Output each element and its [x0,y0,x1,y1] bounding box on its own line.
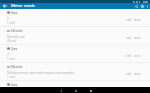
staticText: view [134,72,141,76]
button[interactable]: Electric [0,63,150,80]
staticText: Monthly use [7,35,25,39]
staticText: 1 unit [7,57,15,61]
button[interactable]: Recent apps [88,88,93,93]
staticText: 24 unit [7,39,17,43]
button[interactable]: Add reading [139,3,145,9]
staticText: 7 [7,53,9,57]
button[interactable]: Electric [0,27,150,44]
staticText: 1 unit [7,75,15,79]
staticText: Utilities service plan with regular cons… [7,71,75,75]
staticText: 6 [7,17,9,21]
staticText: edit [126,36,132,40]
staticText: view [134,18,141,22]
button[interactable]: Navigate up [0,3,9,9]
staticText: Electric [11,28,23,33]
staticText: Electric [11,64,23,69]
button[interactable]: Back [58,88,63,93]
staticText: 1 unit [7,21,15,25]
staticText: edit [126,54,132,58]
button[interactable]: Gas [0,45,150,62]
staticText: Gas [11,82,18,87]
staticText: Gas [11,46,18,51]
button[interactable]: Gas [0,9,150,26]
staticText: edit [126,18,132,22]
staticText: view [134,54,141,58]
staticText: edit [126,72,132,76]
button[interactable]: Gas [0,81,150,87]
button[interactable]: Share [133,3,139,9]
staticText: Gas [11,10,18,15]
button[interactable]: More options [145,3,150,9]
button[interactable]: Home [73,88,78,93]
staticText: view [134,36,141,40]
staticText: Meter reads [11,3,35,9]
